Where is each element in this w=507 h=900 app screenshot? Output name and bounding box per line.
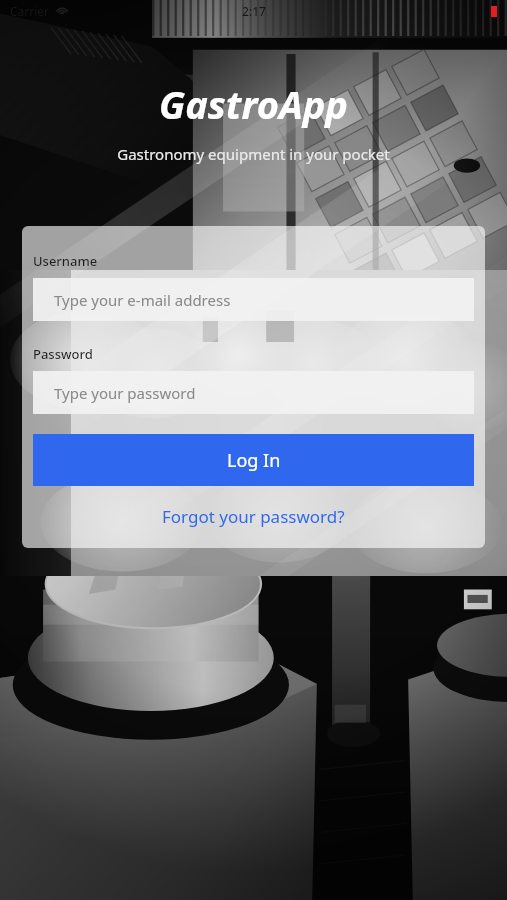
button[interactable]: Username input [33,278,474,321]
staticText: Forgot your password? [162,505,345,528]
button[interactable]: Log In [33,434,474,486]
staticText: Type your e-mail address [54,290,231,310]
staticText: Type your password [54,383,196,403]
staticText: Password [33,345,93,363]
staticText: Gastronomy equipment in your pocket [0,144,507,164]
staticText: Username [33,252,98,270]
staticText: Log In [227,448,281,473]
staticText: GastroApp [0,78,507,130]
staticText: 2:17 [242,3,266,19]
staticText: Carrier [10,3,50,19]
button[interactable]: Password input [33,371,474,414]
button[interactable]: Forgot your password? [33,500,474,532]
